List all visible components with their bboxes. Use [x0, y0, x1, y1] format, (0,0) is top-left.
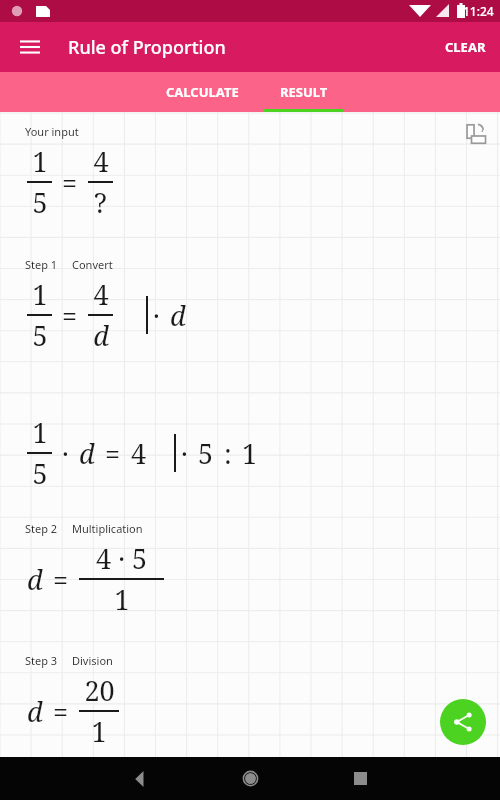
staticText: Division [72, 653, 113, 668]
staticText: 1 [242, 435, 258, 472]
button[interactable]: Recent apps [305, 757, 415, 800]
staticText: Step 2 [25, 521, 58, 536]
staticText: = [62, 164, 78, 201]
staticText: 1 [32, 143, 48, 180]
staticText: ? [94, 184, 107, 221]
staticText: = [53, 693, 69, 730]
staticText: 5 [198, 435, 214, 472]
staticText: d [79, 435, 95, 472]
staticText: 1 [32, 276, 48, 313]
staticText: Convert [72, 257, 113, 272]
staticText: Step 1 [25, 257, 58, 272]
button[interactable]: Home [195, 757, 305, 800]
button[interactable]: Share [440, 699, 486, 745]
staticText: d [27, 693, 43, 730]
staticText: CLEAR [445, 38, 486, 56]
staticText: 5 [32, 455, 48, 492]
staticText: 1 [32, 414, 48, 451]
staticText: 4 · 5 [96, 540, 147, 577]
staticText: = [53, 561, 69, 598]
staticText: 4 [131, 435, 147, 472]
staticText: Step 3 [25, 653, 58, 668]
staticText: = [105, 435, 121, 472]
staticText: · [153, 297, 160, 334]
staticText: CALCULATE [166, 83, 239, 101]
button[interactable]: Back [85, 757, 195, 800]
staticText: RESULT [280, 83, 328, 101]
button[interactable]: CLEAR [437, 30, 494, 64]
staticText: 1 [114, 581, 130, 618]
staticText: 4 [93, 276, 109, 313]
button[interactable]: Open navigation menu [12, 29, 48, 65]
staticText: Your input [25, 124, 79, 139]
staticText: 20 [84, 672, 115, 709]
staticText: Rule of Proportion [68, 35, 226, 60]
staticText: d [93, 317, 109, 354]
staticText: = [62, 297, 78, 334]
staticText: 11:24 [463, 3, 494, 19]
button[interactable]: Rotate orientation [458, 118, 494, 154]
staticText: d [170, 297, 186, 334]
button[interactable]: CALCULATE [150, 72, 255, 112]
staticText: 4 [93, 143, 109, 180]
staticText: Multiplication [72, 521, 143, 536]
staticText: 5 [32, 317, 48, 354]
staticText: · [181, 435, 188, 472]
button[interactable]: RESULT [255, 72, 352, 112]
staticText: 5 [32, 184, 48, 221]
staticText: 1 [91, 713, 107, 750]
staticText: d [27, 561, 43, 598]
staticText: · [62, 435, 69, 472]
staticText: : [224, 435, 232, 472]
